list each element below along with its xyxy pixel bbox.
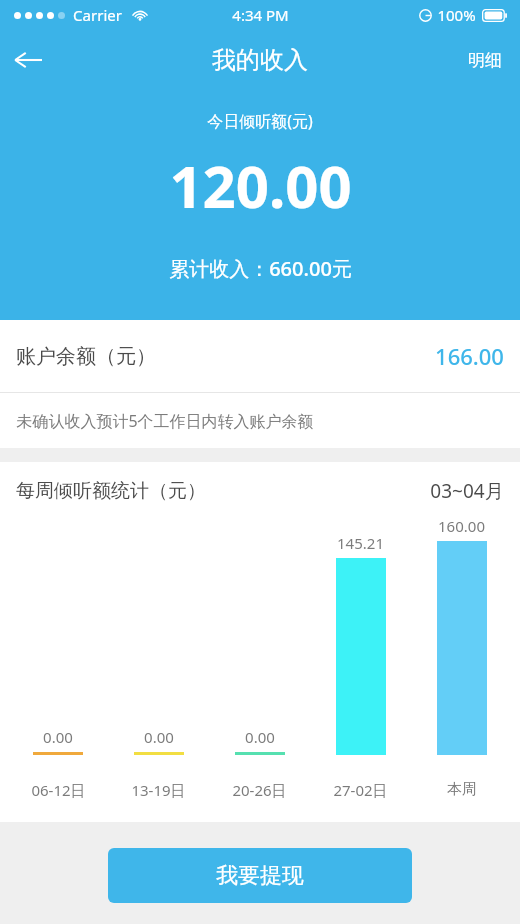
staticText: 累计收入：660.00元	[169, 255, 352, 282]
button[interactable]: 明细	[450, 36, 520, 85]
staticText: 账户余额（元）	[16, 344, 156, 369]
staticText: 我要提现	[216, 862, 304, 890]
staticText: 120.00	[169, 146, 352, 225]
button[interactable]: 我要提现	[108, 848, 412, 903]
staticText: 166.00	[435, 341, 504, 371]
staticText: 100%	[437, 5, 476, 25]
staticText: 今日倾听额(元)	[207, 110, 313, 132]
button[interactable]: Back	[0, 32, 56, 88]
staticText: 13-19日	[131, 780, 186, 800]
staticText: 27-02日	[333, 780, 388, 800]
button[interactable]: 账户余额（元）	[0, 320, 520, 392]
staticText: 明细	[468, 50, 502, 71]
staticText: 06-12日	[31, 780, 86, 800]
staticText: 每周倾听额统计（元）	[16, 479, 206, 503]
staticText: 未确认收入预计5个工作日内转入账户余额	[16, 410, 314, 432]
staticText: 我的收入	[212, 45, 308, 75]
staticText: 160.00	[438, 516, 485, 536]
staticText: 145.21	[337, 533, 384, 553]
staticText: 03~04月	[430, 478, 504, 504]
staticText: Carrier	[73, 5, 122, 25]
staticText: 0.00	[245, 727, 275, 747]
staticText: 4:34 PM	[232, 5, 289, 25]
staticText: 0.00	[144, 727, 174, 747]
staticText: 本周	[447, 780, 477, 799]
staticText: 20-26日	[232, 780, 287, 800]
staticText: 0.00	[43, 727, 73, 747]
